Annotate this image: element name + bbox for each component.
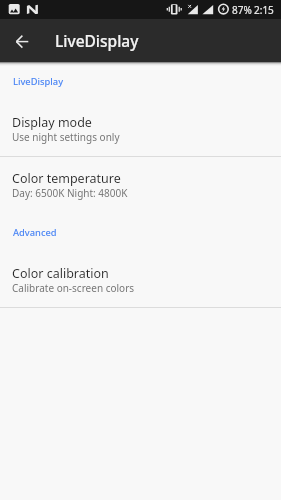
staticText: Use night settings only	[12, 130, 120, 144]
staticText: Calibrate on-screen colors	[12, 281, 135, 295]
button[interactable]: Color temperature	[0, 157, 281, 212]
staticText: Display mode	[12, 114, 92, 131]
staticText: LiveDisplay	[13, 75, 64, 88]
staticText: 2:15	[254, 3, 274, 17]
staticText: Color temperature	[12, 170, 121, 187]
staticText: LiveDisplay	[55, 30, 139, 51]
button[interactable]: Display mode	[0, 105, 281, 156]
button[interactable]: Color calibration	[0, 256, 281, 307]
staticText: Advanced	[13, 226, 57, 239]
button[interactable]: Back	[6, 25, 38, 57]
staticText: Color calibration	[12, 265, 109, 282]
staticText: 87%	[232, 3, 252, 17]
staticText: Day: 6500K Night: 4800K	[12, 186, 128, 200]
